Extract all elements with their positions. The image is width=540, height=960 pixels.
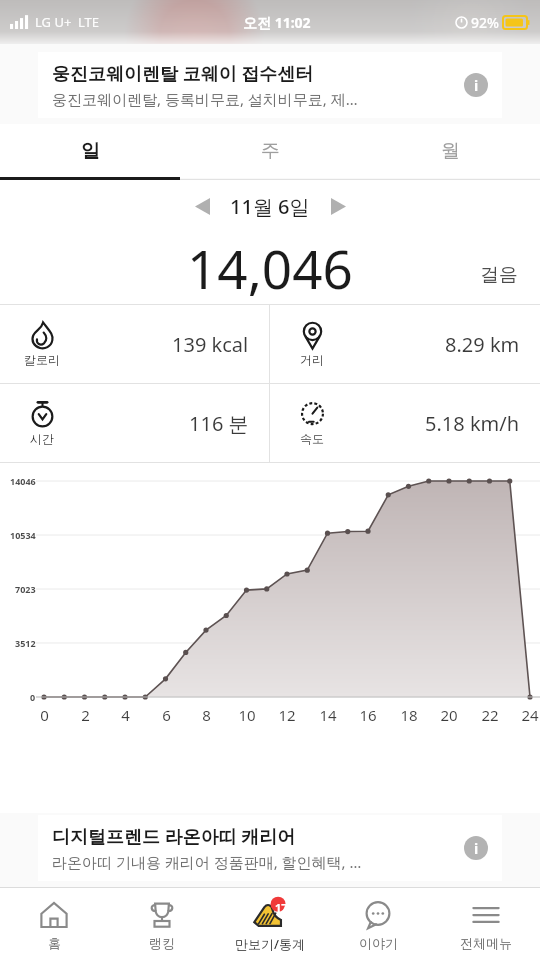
staticText: 칼로리 [24, 352, 60, 367]
staticText: 24 [521, 705, 539, 725]
button[interactable]: 이야기 [324, 888, 432, 960]
staticText: 라온아띠 기내용 캐리어 정품판매, 할인혜택, … [52, 852, 362, 872]
staticText: 8.29 km [445, 331, 520, 358]
staticText: 웅진코웨이렌탈, 등록비무료, 설치비무료, 제… [52, 89, 358, 109]
button[interactable]: 다음 날짜 [318, 186, 358, 226]
button[interactable]: 거리 [270, 305, 540, 383]
button[interactable]: 속도 [270, 384, 540, 462]
staticText: 20 [440, 705, 458, 725]
staticText: 4 [121, 705, 130, 725]
staticText: 10 [238, 705, 256, 725]
staticText: 5.18 km/h [425, 410, 520, 437]
staticText: 6 [162, 705, 171, 725]
staticText: 2 [81, 705, 90, 725]
staticText: 92% [471, 13, 499, 32]
staticText: i [474, 76, 479, 95]
button[interactable]: 홈 [0, 888, 108, 960]
staticText: 만보기/통계 [235, 935, 306, 953]
staticText: 전체메뉴 [460, 935, 512, 951]
button[interactable]: 일 [0, 124, 180, 177]
staticText: 0 [40, 705, 49, 725]
staticText: 139 kcal [172, 331, 249, 358]
staticText: 이야기 [359, 935, 398, 951]
staticText: 웅진코웨이렌탈 코웨이 접수센터 [52, 61, 314, 86]
button[interactable]: 월 [360, 124, 540, 177]
button[interactable]: 웅진코웨이렌탈 코웨이 접수센터 [38, 52, 502, 118]
staticText: 월 [441, 139, 460, 163]
staticText: 랭킹 [149, 935, 175, 951]
staticText: 12 [278, 705, 296, 725]
staticText: 오전 11:02 [243, 13, 311, 32]
staticText: 걸음 [480, 263, 518, 287]
staticText: 홈 [48, 935, 61, 951]
staticText: 14046 [10, 475, 36, 487]
button[interactable]: 디지털프렌드 라온아띠 캐리어 [38, 815, 502, 881]
staticText: 8 [202, 705, 211, 725]
button[interactable]: 주 [180, 124, 360, 177]
staticText: 주 [261, 139, 280, 163]
staticText: 10534 [10, 529, 36, 541]
button[interactable]: 이전 날짜 [182, 186, 222, 226]
staticText: 116 분 [189, 410, 249, 437]
button[interactable]: 칼로리 [0, 305, 269, 383]
staticText: 속도 [300, 431, 324, 446]
staticText: 3512 [15, 637, 36, 649]
staticText: 시간 [30, 431, 54, 446]
staticText: 7023 [15, 583, 36, 595]
button[interactable]: 광고 정보 [464, 73, 488, 97]
button[interactable]: 전체메뉴 [432, 888, 540, 960]
staticText: 22 [481, 705, 499, 725]
staticText: 16 [359, 705, 377, 725]
staticText: 14 [319, 705, 337, 725]
staticText: 디지털프렌드 라온아띠 캐리어 [52, 824, 296, 849]
staticText: LTE [78, 13, 100, 31]
button[interactable]: 시간 [0, 384, 269, 462]
staticText: 일 [81, 139, 100, 163]
button[interactable]: 랭킹 [108, 888, 216, 960]
staticText: LG U+ [35, 13, 72, 31]
button[interactable]: 만보기 통계 [216, 888, 324, 960]
staticText: 17 [275, 900, 288, 915]
staticText: 11월 6일 [230, 193, 310, 220]
staticText: 0 [30, 691, 36, 703]
staticText: 거리 [300, 352, 324, 367]
staticText: 14,046 [187, 232, 353, 304]
staticText: i [474, 839, 479, 858]
button[interactable]: 광고 정보 [464, 836, 488, 860]
staticText: 18 [400, 705, 418, 725]
